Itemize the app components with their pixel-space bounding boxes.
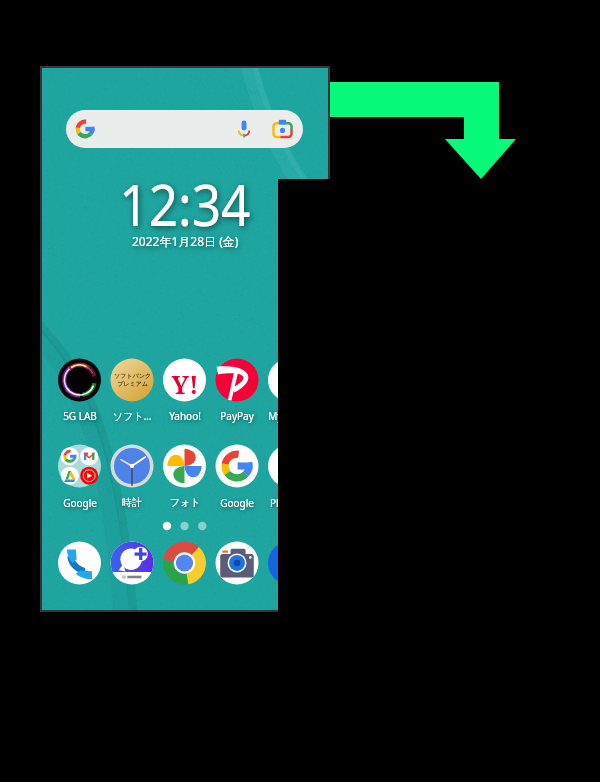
- button[interactable]: Google search: [66, 110, 303, 148]
- button[interactable]: 時計: [108, 443, 156, 503]
- button[interactable]: 電話: [56, 540, 104, 600]
- button[interactable]: Play ストア: [266, 443, 314, 503]
- button[interactable]: SoftBank: [266, 540, 314, 600]
- staticText: 12:34: [119, 165, 251, 243]
- staticText: ソフトバンク: [114, 372, 151, 380]
- button[interactable]: Yahoo!: [161, 357, 209, 417]
- button[interactable]: フォト: [161, 443, 209, 503]
- staticText: PayPay: [202, 409, 272, 610]
- staticText: Google: [45, 496, 115, 610]
- button[interactable]: Chrome: [161, 540, 209, 600]
- staticText: My Soft…: [255, 409, 325, 610]
- staticText: 時計: [97, 496, 167, 610]
- button[interactable]: ソフトバンクプレミアム: [108, 357, 156, 417]
- staticText: フォト: [150, 496, 220, 610]
- staticText: プレミアム: [117, 380, 148, 388]
- button[interactable]: PayPay: [213, 357, 261, 417]
- staticText: Google: [202, 496, 272, 610]
- staticText: 2022年1月28日 (金): [132, 233, 239, 249]
- button[interactable]: My SoftBank: [266, 357, 314, 417]
- staticText: Yahoo!: [150, 409, 220, 610]
- button[interactable]: 5G LAB: [56, 357, 104, 417]
- staticText: 5G LAB: [45, 409, 115, 610]
- button[interactable]: Google: [213, 443, 261, 503]
- staticText: ソフト…: [97, 409, 167, 610]
- button[interactable]: Google: [56, 443, 104, 503]
- staticText: Play ス…: [255, 496, 325, 610]
- button[interactable]: カメラ: [213, 540, 261, 600]
- button[interactable]: +メッセージ: [108, 540, 156, 600]
- staticText: Y!: [164, 367, 206, 610]
